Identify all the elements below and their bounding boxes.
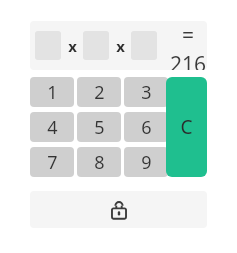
button[interactable]: 7 [30, 147, 74, 177]
staticText: x [68, 36, 77, 56]
staticText: C [180, 114, 193, 140]
button[interactable]: C [166, 77, 207, 177]
staticText: 9 [141, 150, 152, 175]
staticText: x [116, 36, 125, 56]
staticText: 8 [94, 150, 105, 175]
staticText: 4 [47, 115, 58, 140]
staticText: 2 [94, 80, 105, 105]
staticText: 5 [94, 115, 105, 140]
staticText: 6 [141, 115, 152, 140]
staticText: = 216 [164, 21, 207, 70]
button[interactable]: 3 [124, 77, 168, 107]
button[interactable]: 8 [77, 147, 121, 177]
button[interactable]: 4 [30, 112, 74, 142]
staticText: 3 [141, 80, 152, 105]
button[interactable]: 2 [77, 77, 121, 107]
button[interactable]: 5 [77, 112, 121, 142]
staticText: 1 [47, 80, 58, 105]
button[interactable]: 6 [124, 112, 168, 142]
button[interactable]: 1 [30, 77, 74, 107]
staticText: 7 [47, 150, 58, 175]
button[interactable]: 9 [124, 147, 168, 177]
button[interactable]: Lock [30, 191, 207, 228]
